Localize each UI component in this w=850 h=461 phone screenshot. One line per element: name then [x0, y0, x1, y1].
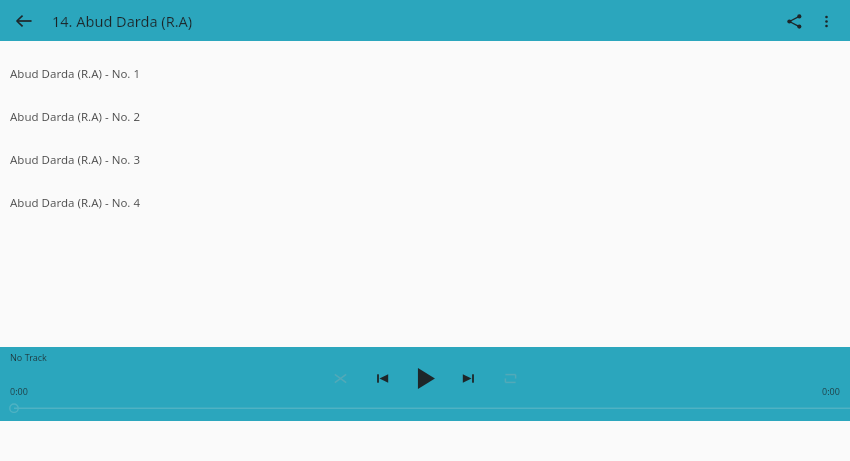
staticText: Abud Darda (R.A) - No. 4 [10, 195, 140, 211]
button[interactable]: Abud Darda (R.A) - No. 4 [0, 181, 850, 224]
button[interactable]: Shuffle [325, 363, 355, 393]
staticText: No Track [10, 351, 47, 363]
button[interactable]: Abud Darda (R.A) - No. 3 [0, 138, 850, 181]
button[interactable]: Next [453, 363, 483, 393]
button[interactable]: Play [409, 362, 441, 394]
button[interactable]: Repeat [495, 363, 525, 393]
button[interactable]: Share [778, 5, 810, 37]
button[interactable]: More options [810, 5, 842, 37]
button[interactable]: Previous [367, 363, 397, 393]
staticText: Abud Darda (R.A) - No. 3 [10, 152, 140, 168]
button[interactable]: Abud Darda (R.A) - No. 2 [0, 95, 850, 138]
button[interactable]: Navigate up [8, 5, 40, 37]
staticText: 0:00 [822, 385, 840, 397]
staticText: Abud Darda (R.A) - No. 1 [10, 66, 140, 82]
button[interactable]: Abud Darda (R.A) - No. 1 [0, 52, 850, 95]
button[interactable]: Seek bar [0, 401, 850, 417]
staticText: 0:00 [10, 385, 28, 397]
staticText: Abud Darda (R.A) - No. 2 [10, 109, 140, 125]
staticText: 14. Abud Darda (R.A) [52, 11, 193, 31]
